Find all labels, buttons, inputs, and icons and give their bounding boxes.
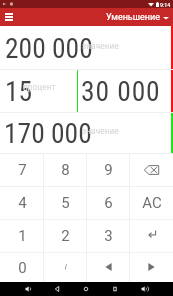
staticText: 9	[104, 161, 113, 179]
button[interactable]: Enter	[130, 220, 173, 252]
staticText: 0	[18, 259, 27, 277]
staticText: 7	[18, 161, 27, 179]
staticText: значение	[82, 40, 119, 51]
button[interactable]: 6	[87, 187, 130, 219]
button[interactable]: Move cursor right	[130, 253, 173, 282]
staticText: 30 000	[81, 75, 161, 107]
button[interactable]: Backspace	[130, 154, 173, 186]
staticText: 3	[104, 227, 113, 245]
button[interactable]: AC	[130, 187, 173, 219]
button[interactable]: Move cursor left	[87, 253, 130, 282]
button[interactable]: 8	[44, 154, 87, 186]
button[interactable]	[44, 253, 87, 282]
button[interactable]: 9	[87, 154, 130, 186]
button[interactable]: 1	[0, 220, 44, 252]
staticText: Уменьшение	[106, 12, 160, 23]
staticText: 170 000	[4, 117, 92, 149]
staticText: AC	[142, 194, 162, 212]
button[interactable]: 5	[44, 187, 87, 219]
button[interactable]: 4	[0, 187, 44, 219]
button[interactable]: 2	[44, 220, 87, 252]
other: Move cursor left	[105, 263, 112, 271]
staticText: 5	[61, 194, 70, 212]
button[interactable]: Уменьшение	[106, 12, 169, 23]
button[interactable]: 7	[0, 154, 44, 186]
button[interactable]: Back	[45, 282, 69, 296]
staticText: процент	[23, 81, 56, 92]
button[interactable]: 3	[87, 220, 130, 252]
staticText: 4	[18, 194, 27, 212]
staticText: значение	[82, 125, 119, 136]
staticText: 2	[61, 227, 70, 245]
staticText: 6	[104, 194, 113, 212]
button[interactable]: 0	[0, 253, 44, 282]
button[interactable]: Volume down	[17, 282, 41, 296]
other: Enter	[148, 230, 156, 238]
other: Move cursor right	[148, 263, 155, 271]
staticText: 15	[5, 75, 33, 107]
staticText: 1	[18, 227, 27, 245]
button[interactable]: Open navigation menu	[1, 8, 17, 25]
staticText: 9:14	[160, 1, 171, 8]
button[interactable]: Recent apps	[103, 282, 127, 296]
staticText: 8	[61, 161, 70, 179]
button[interactable]: Home	[74, 282, 98, 296]
button[interactable]: Volume up	[133, 282, 157, 296]
staticText: 200 000	[5, 32, 93, 64]
other: Backspace	[144, 165, 159, 175]
